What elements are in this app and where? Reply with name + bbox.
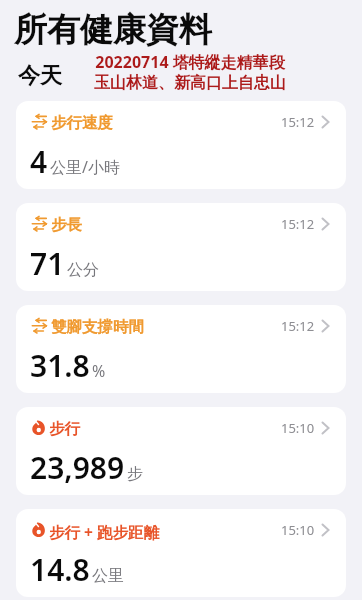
staticText: 20220714 塔特縱走精華段 玉山林道、新高口上自忠山 (94, 51, 286, 93)
staticText: 23,989 (30, 447, 125, 488)
staticText: 步行速度 (51, 113, 113, 133)
staticText: 步行 (49, 419, 80, 439)
staticText: 15:10 (281, 419, 315, 437)
button[interactable]: 步行 (16, 407, 346, 495)
staticText: 步 (127, 464, 143, 484)
staticText: 4 (30, 141, 48, 182)
staticText: 71 (30, 243, 65, 284)
staticText: % (92, 360, 106, 382)
button[interactable]: 步行 + 跑步距離 (16, 509, 346, 597)
staticText: 公里/小時 (50, 156, 120, 178)
staticText: 31.8 (30, 345, 90, 386)
staticText: 步長 (51, 215, 82, 235)
staticText: 公分 (67, 260, 99, 280)
staticText: 雙腳支撐時間 (51, 317, 144, 337)
staticText: 15:10 (281, 521, 315, 539)
staticText: 所有健康資料 (14, 9, 212, 51)
staticText: 14.8 (30, 549, 90, 590)
staticText: 公里 (92, 566, 124, 586)
staticText: 步行 + 跑步距離 (49, 521, 159, 542)
button[interactable]: 步行速度 (16, 101, 346, 189)
staticText: 15:12 (281, 317, 315, 335)
button[interactable]: 步長 (16, 203, 346, 291)
staticText: 15:12 (281, 215, 315, 233)
staticText: 今天 (18, 62, 62, 90)
staticText: 15:12 (281, 113, 315, 131)
button[interactable]: 雙腳支撐時間 (16, 305, 346, 393)
